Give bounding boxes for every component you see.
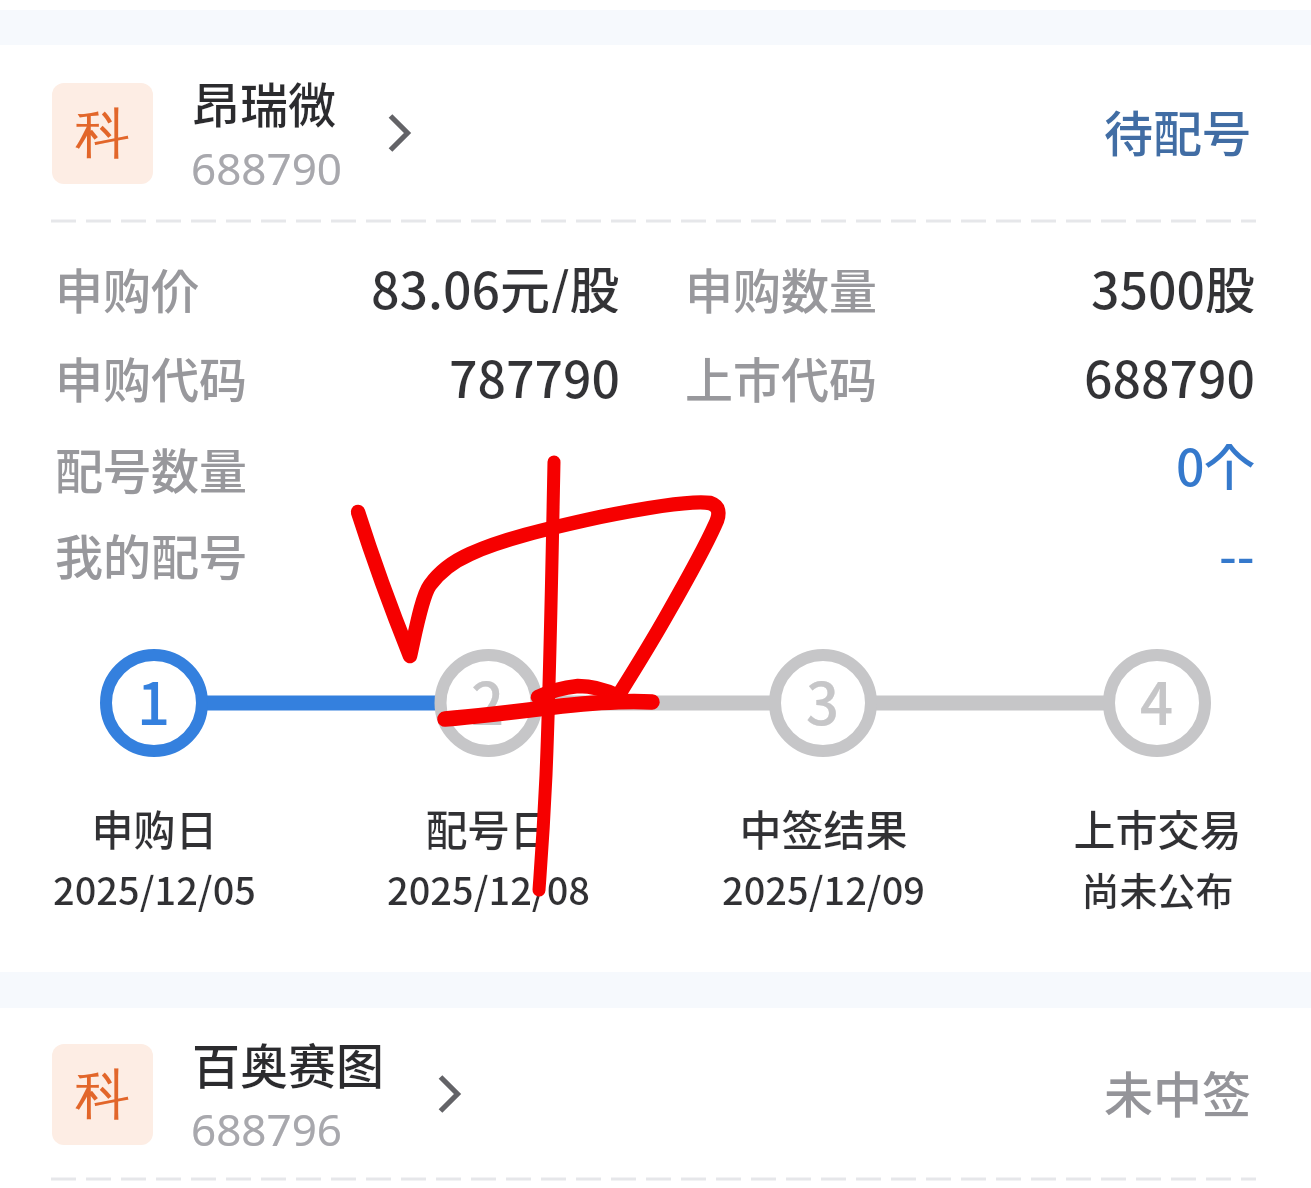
staticText: 科 — [75, 99, 130, 168]
staticText: 2025/12/08 — [387, 861, 590, 916]
staticText: 百奥赛图 — [192, 1028, 385, 1098]
staticText: 787790 — [449, 340, 620, 402]
staticText: 2025/12/05 — [53, 861, 256, 916]
staticText: 申购代码 — [55, 342, 248, 412]
button[interactable]: 中签结果 — [663, 797, 983, 916]
staticText: 4 — [1140, 658, 1174, 738]
staticText: 我的配号 — [55, 519, 248, 589]
staticText: 83.06元/股 — [371, 251, 620, 313]
staticText: 上市代码 — [685, 342, 878, 412]
button[interactable]: 0个 — [1176, 428, 1255, 490]
staticText: 上市交易 — [1073, 797, 1242, 858]
staticText: 申购数量 — [685, 253, 878, 323]
staticText: 688796 — [191, 1099, 343, 1159]
button[interactable] — [0, 1030, 1311, 1180]
button[interactable]: 配号日 — [328, 797, 648, 916]
button[interactable]: -- — [1219, 517, 1255, 579]
staticText: 尚未公布 — [1081, 861, 1234, 916]
staticText: 配号日 — [425, 797, 552, 858]
other: 查看详情 — [389, 103, 429, 163]
staticText: 待配号 — [1104, 95, 1252, 166]
staticText: 3500股 — [1091, 251, 1255, 313]
staticText: 2 — [471, 658, 505, 738]
staticText: 688790 — [1084, 340, 1255, 402]
button[interactable] — [0, 69, 1311, 219]
button[interactable]: 上市交易 — [997, 797, 1311, 916]
staticText: 688790 — [191, 138, 343, 198]
staticText: 1 — [137, 658, 171, 738]
staticText: 中签结果 — [739, 797, 908, 858]
staticText: 2025/12/09 — [722, 861, 925, 916]
staticText: 昂瑞微 — [192, 67, 337, 137]
staticText: 配号数量 — [55, 433, 248, 503]
staticText: 申购日 — [91, 797, 218, 858]
other: 查看详情 — [439, 1064, 479, 1124]
button[interactable]: 申购日 — [0, 797, 314, 916]
staticText: 科 — [75, 1060, 130, 1129]
staticText: 申购价 — [55, 253, 200, 323]
staticText: 3 — [806, 658, 840, 738]
staticText: 未中签 — [1104, 1056, 1252, 1127]
